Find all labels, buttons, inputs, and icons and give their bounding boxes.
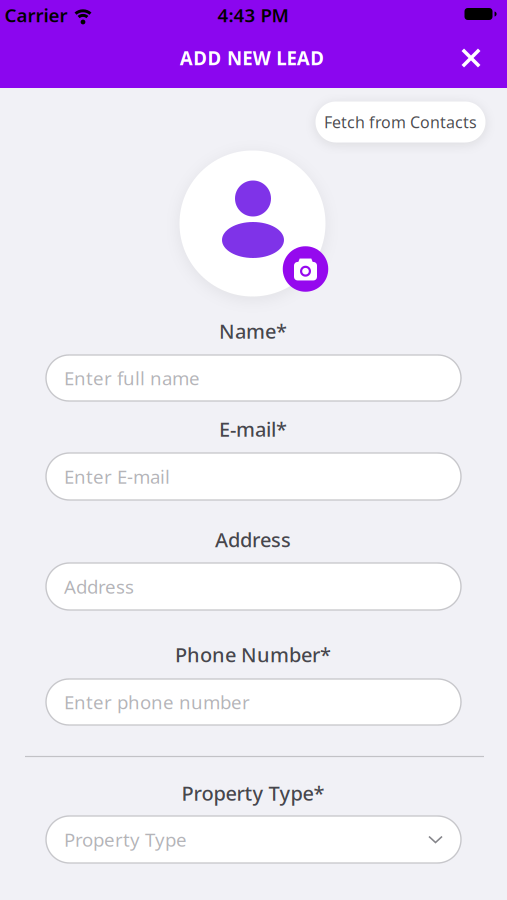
staticText: ADD NEW LEAD — [180, 46, 324, 70]
button[interactable]: Fetch from Contacts — [315, 101, 485, 142]
staticText: Name* — [219, 318, 287, 344]
button[interactable]: Property Type — [46, 816, 461, 863]
staticText: Property Type — [64, 827, 187, 852]
staticText: E-mail* — [219, 416, 287, 442]
staticText: Property Type* — [181, 780, 324, 806]
staticText: Phone Number* — [175, 641, 331, 668]
staticText: Enter full name — [64, 366, 200, 390]
button[interactable]: Change photo — [283, 246, 328, 292]
staticText: Enter E-mail — [64, 464, 170, 489]
staticText: Carrier — [4, 3, 67, 27]
staticText: Address — [215, 526, 291, 553]
staticText: Enter phone number — [64, 690, 250, 714]
staticText: Address — [64, 574, 134, 599]
staticText: 4:43 PM — [217, 3, 288, 27]
staticText: Fetch from Contacts — [324, 111, 477, 133]
button[interactable]: Close — [460, 47, 482, 69]
